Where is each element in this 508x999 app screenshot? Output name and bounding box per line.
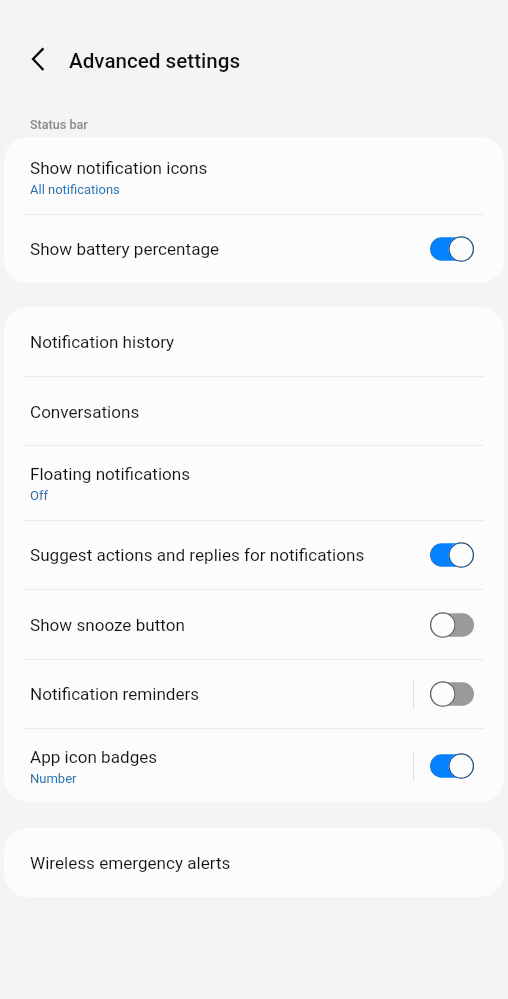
button[interactable]: Toggle on xyxy=(430,235,474,263)
button[interactable]: Floating notifications xyxy=(4,446,504,520)
staticText: Show snooze button xyxy=(30,615,185,635)
staticText: Suggest actions and replies for notifica… xyxy=(30,545,365,565)
staticText: Off xyxy=(30,488,48,503)
button[interactable]: Notification reminders xyxy=(4,660,504,728)
staticText: App icon badges xyxy=(30,747,158,767)
button[interactable]: Show notification icons xyxy=(4,137,504,214)
staticText: Floating notifications xyxy=(30,464,191,484)
button[interactable]: Navigate up xyxy=(26,46,52,72)
staticText: Conversations xyxy=(30,402,140,422)
staticText: Show notification icons xyxy=(30,158,208,178)
button[interactable]: Toggle on xyxy=(430,541,474,569)
staticText: Wireless emergency alerts xyxy=(30,853,231,873)
staticText: Notification reminders xyxy=(30,684,200,704)
staticText: Advanced settings xyxy=(69,49,241,73)
button[interactable]: Notification history xyxy=(4,307,504,376)
button[interactable]: Toggle on xyxy=(430,752,474,780)
button[interactable]: Suggest actions and replies for notifica… xyxy=(4,521,504,589)
button[interactable]: App icon badges xyxy=(4,729,504,802)
button[interactable]: Show battery percentage xyxy=(4,215,504,283)
staticText: All notifications xyxy=(30,182,120,197)
button[interactable]: Wireless emergency alerts xyxy=(4,828,504,897)
staticText: Notification history xyxy=(30,332,175,352)
staticText: Show battery percentage xyxy=(30,239,220,259)
button[interactable]: Conversations xyxy=(4,377,504,445)
button[interactable]: Toggle off xyxy=(430,680,474,708)
button[interactable]: Toggle off xyxy=(430,611,474,639)
staticText: Number xyxy=(30,771,77,786)
button[interactable]: Show snooze button xyxy=(4,590,504,659)
staticText: Status bar xyxy=(30,117,88,132)
